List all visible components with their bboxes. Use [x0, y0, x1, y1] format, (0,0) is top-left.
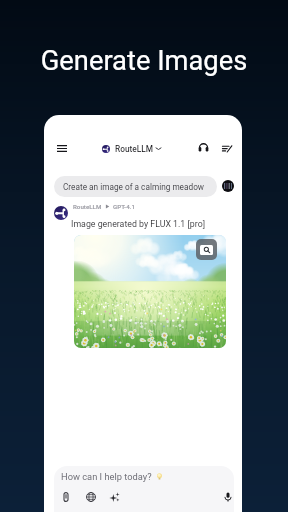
staticText: Generate Images — [0, 45, 288, 77]
staticText: Image generated by FLUX 1.1 [pro] — [71, 219, 205, 229]
staticText: How can I help today? — [61, 471, 152, 482]
button[interactable]: Voice mode — [194, 138, 213, 157]
button[interactable]: Menu — [52, 139, 71, 158]
button[interactable]: Search the web — [83, 489, 98, 504]
button[interactable]: Attach file — [58, 489, 73, 504]
staticText: GPT-4.1 — [113, 203, 135, 210]
button[interactable]: AI tools — [107, 489, 122, 504]
staticText: RouteLLM — [73, 203, 102, 210]
button[interactable]: Generated image — [74, 235, 226, 348]
button[interactable]: Zoom image — [196, 239, 217, 260]
staticText: Create an image of a calming meadow — [63, 182, 205, 192]
button[interactable]: Voice input — [220, 489, 234, 504]
button[interactable]: RouteLLM — [100, 139, 163, 158]
staticText: RouteLLM — [115, 144, 153, 154]
button[interactable]: New chat — [217, 138, 236, 157]
button[interactable]: Create an image of a calming meadow — [54, 176, 217, 197]
